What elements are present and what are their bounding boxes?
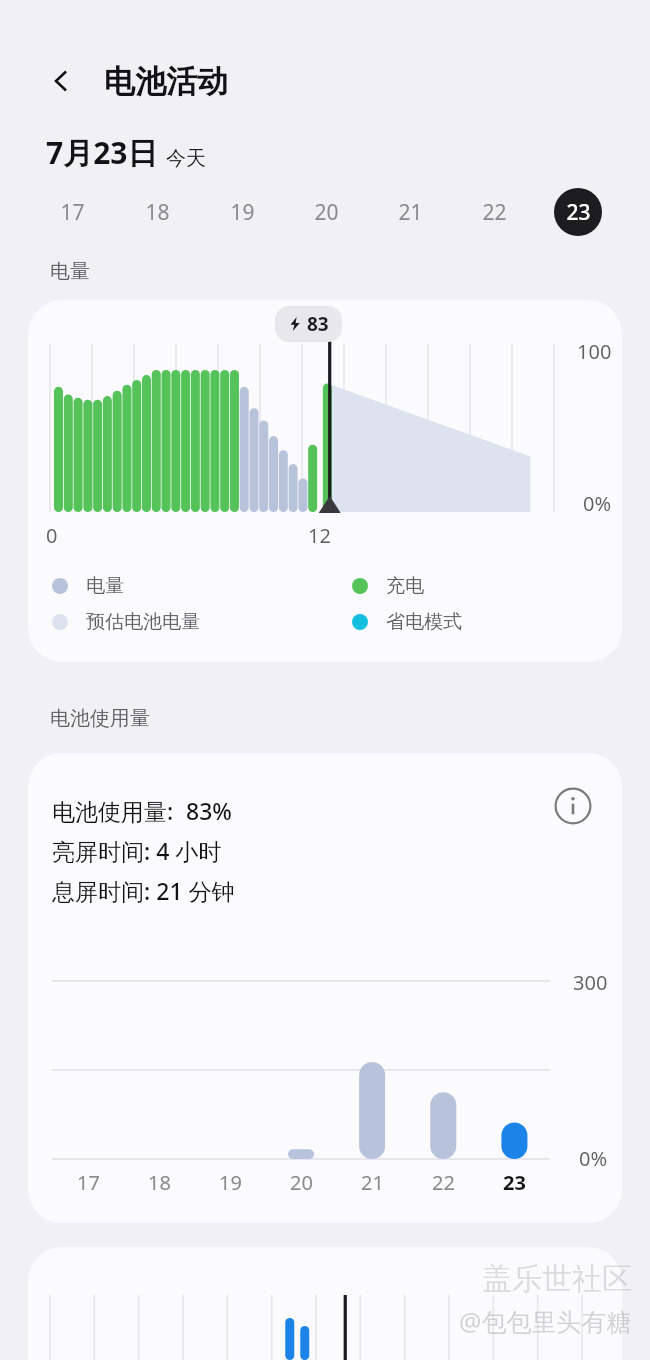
staticText: 17: [77, 1169, 100, 1196]
staticText: 20: [314, 198, 339, 227]
staticText: 18: [148, 1169, 171, 1196]
staticText: 预估电池电量: [86, 610, 200, 634]
staticText: 电池使用量: [50, 706, 150, 731]
button[interactable]: 20: [284, 183, 368, 241]
staticText: 电量: [86, 574, 124, 598]
staticText: 7月23日: [46, 132, 158, 173]
staticText: 100: [577, 338, 612, 365]
staticText: 23: [503, 1169, 526, 1196]
staticText: 息屏时间: 21 分钟: [52, 875, 235, 906]
button[interactable]: Info: [548, 781, 598, 831]
button[interactable]: 22: [452, 183, 536, 241]
staticText: 0%: [583, 490, 612, 517]
staticText: 今天: [166, 146, 206, 171]
staticText: 充电: [386, 574, 424, 598]
button[interactable]: 18: [115, 183, 200, 241]
button[interactable]: 电池使用量:: [28, 753, 622, 1223]
staticText: 23: [566, 198, 591, 227]
staticText: 19: [230, 198, 255, 227]
staticText: 亮屏时间: 4 小时: [52, 835, 222, 866]
staticText: @包包里头有糖: [459, 1304, 632, 1338]
staticText: 22: [482, 198, 507, 227]
staticText: 22: [432, 1169, 455, 1196]
staticText: 83: [307, 311, 329, 337]
staticText: 0%: [579, 1145, 608, 1172]
button[interactable]: Back: [34, 54, 88, 108]
staticText: 12: [308, 522, 331, 549]
staticText: 18: [145, 198, 170, 227]
staticText: 电池使用量:: [52, 795, 174, 826]
button[interactable]: 17: [30, 183, 115, 241]
button[interactable]: 19: [200, 183, 284, 241]
staticText: 21: [398, 198, 423, 227]
staticText: 21: [361, 1169, 384, 1196]
staticText: 20: [290, 1169, 313, 1196]
button[interactable]: 100: [28, 300, 622, 662]
staticText: 省电模式: [386, 610, 462, 634]
button[interactable]: [28, 1247, 622, 1360]
staticText: 电量: [50, 259, 90, 284]
button[interactable]: 23: [536, 183, 620, 241]
staticText: 盖乐世社区: [482, 1260, 632, 1298]
staticText: 83%: [186, 795, 232, 826]
staticText: 19: [219, 1169, 242, 1196]
button[interactable]: 21: [368, 183, 452, 241]
staticText: 电池活动: [104, 62, 228, 101]
staticText: 17: [60, 198, 85, 227]
staticText: 0: [46, 522, 58, 549]
staticText: 300: [573, 969, 608, 996]
